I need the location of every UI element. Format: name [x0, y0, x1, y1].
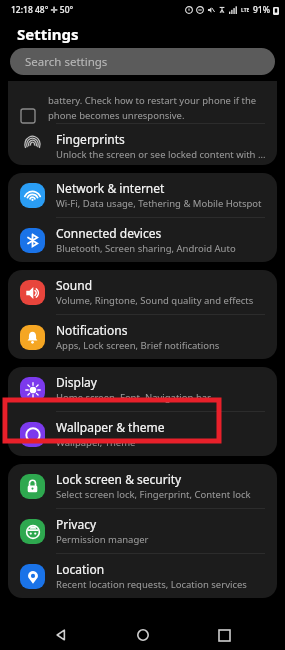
button[interactable]: Sound — [8, 270, 277, 314]
button[interactable]: Display — [8, 367, 277, 411]
staticText: Display — [56, 374, 97, 390]
staticText: Network & internet — [56, 180, 165, 196]
staticText: Location — [56, 561, 105, 577]
staticText: Privacy — [56, 516, 97, 532]
button[interactable]: Notifications — [8, 315, 277, 359]
button[interactable]: Back — [41, 620, 81, 650]
button[interactable]: Lock screen & security — [8, 464, 277, 508]
staticText: Unlock the screen or see locked content … — [56, 148, 267, 158]
button[interactable]: Connected devices — [8, 218, 277, 262]
staticText: Lock screen & security — [56, 471, 182, 487]
staticText: Settings — [17, 24, 79, 44]
staticText: Recent location requests, Location servi… — [56, 578, 247, 591]
staticText: Select screen lock, Fingerprint, Content… — [56, 488, 251, 501]
staticText: Connected devices — [56, 225, 162, 241]
staticText: Apps, Lock screen, Brief notifications — [56, 339, 220, 352]
staticText: Wi-Fi, Data usage, Tethering & Mobile Ho… — [56, 197, 262, 210]
button[interactable]: Location — [8, 554, 277, 598]
staticText: Volume, Ringtone, Sound quality and effe… — [56, 294, 254, 307]
button[interactable]: Network & internet — [8, 173, 277, 217]
staticText: 12:18 48° ✛ 50° — [11, 4, 74, 16]
staticText: battery. Check how to restart your phone… — [48, 94, 257, 107]
staticText: LTE — [241, 7, 250, 14]
staticText: Permission manager — [56, 533, 149, 546]
staticText: 91% — [253, 4, 270, 16]
button[interactable]: battery. Check how to restart your phone… — [8, 81, 277, 123]
button[interactable]: Wallpaper & theme — [8, 412, 277, 456]
button[interactable]: Recent apps — [204, 620, 244, 650]
button[interactable]: Search settings — [10, 48, 275, 75]
staticText: Sound — [56, 277, 93, 293]
button[interactable]: Privacy — [8, 509, 277, 553]
button[interactable]: Fingerprints — [8, 124, 277, 165]
staticText: phone becomes unresponsive. — [48, 109, 185, 122]
staticText: Bluetooth, Screen sharing, Android Auto — [56, 242, 236, 255]
staticText: Search settings — [25, 54, 108, 70]
staticText: Wallpaper, Theme — [56, 436, 136, 449]
button[interactable]: Home — [123, 620, 163, 650]
staticText: Home screen, Font, Navigation bar — [56, 391, 212, 404]
staticText: Notifications — [56, 322, 128, 338]
staticText: Wallpaper & theme — [56, 419, 165, 435]
staticText: Fingerprints — [56, 131, 125, 147]
